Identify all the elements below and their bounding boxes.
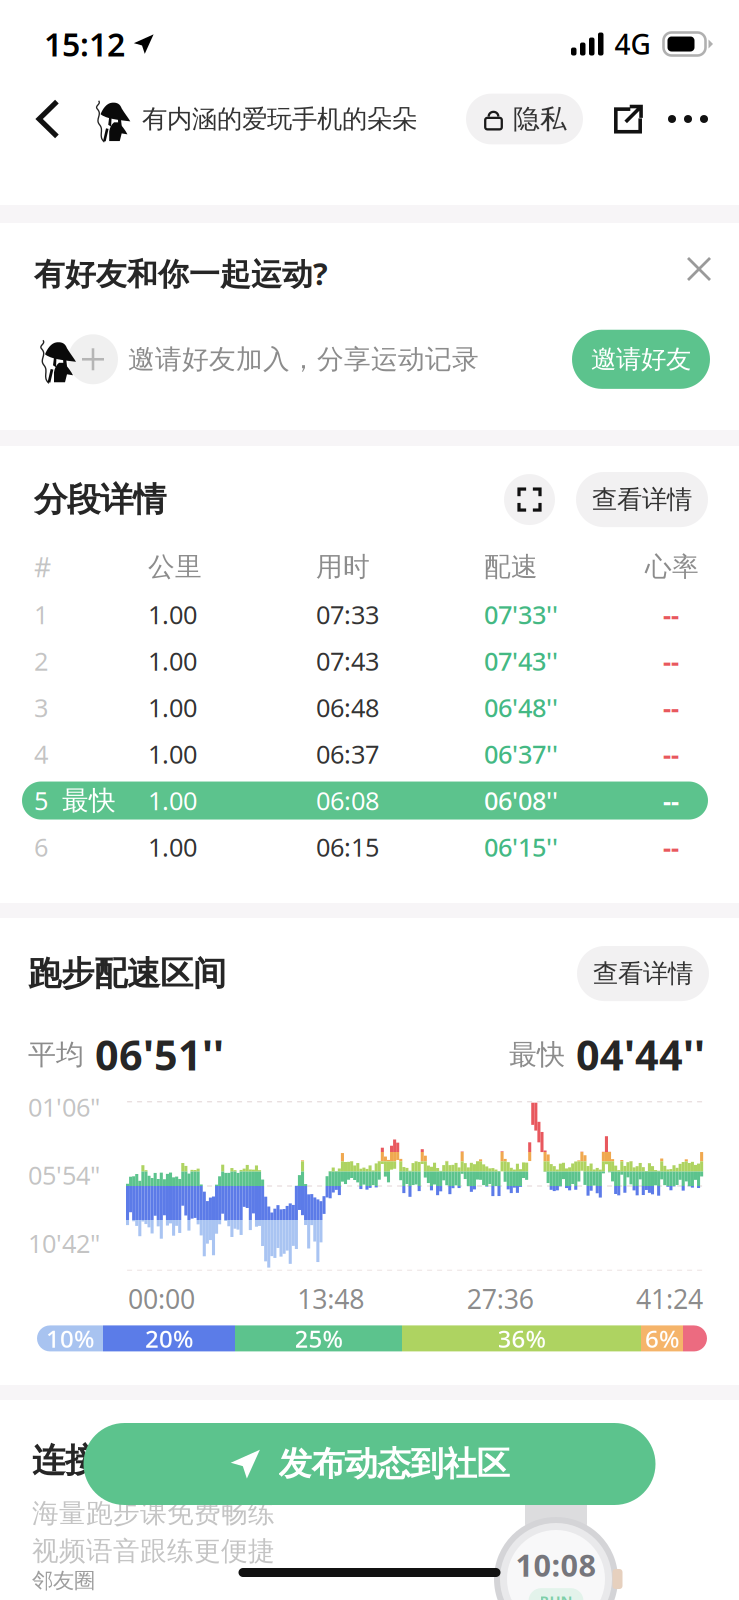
staticText: 6 (34, 830, 48, 864)
button[interactable]: Back (20, 88, 76, 150)
staticText: 06:08 (316, 784, 379, 817)
staticText: 有内涵的爱玩手机的朵朵 (142, 103, 417, 134)
staticText: 41:24 (636, 1281, 703, 1316)
staticText: 查看详情 (592, 484, 692, 515)
staticText: 连接手表 (32, 1440, 164, 1481)
staticText: 00:00 (128, 1281, 195, 1316)
staticText: 06:15 (316, 830, 379, 864)
staticText: 01'06" (28, 1090, 100, 1124)
staticText: 06'48'' (484, 691, 558, 724)
staticText: 1.00 (148, 644, 197, 678)
button[interactable]: 隐私 (466, 94, 583, 144)
staticText: 07:33 (316, 598, 379, 631)
staticText: 25% (294, 1322, 342, 1354)
staticText: 邀请好友加入，分享运动记录 (128, 343, 479, 376)
staticText: 1.00 (148, 830, 197, 864)
button[interactable]: 发布动态到社区 (83, 1423, 655, 1505)
staticText: 07'33'' (484, 598, 558, 631)
staticText: 10% (46, 1322, 94, 1354)
staticText: 4G (614, 25, 650, 63)
staticText: -- (663, 830, 679, 864)
staticText: 海量跑步课免费畅练 (32, 1497, 275, 1530)
staticText: 心率 (645, 550, 699, 583)
staticText: -- (663, 598, 679, 631)
staticText: 06'51'' (84, 1027, 224, 1082)
staticText: 最快 (509, 1037, 565, 1072)
staticText: 跑步配速区间 (28, 953, 226, 994)
staticText: 06:37 (316, 737, 379, 771)
staticText: 邀请好友 (591, 344, 691, 375)
staticText: 5 (34, 784, 48, 817)
staticText: 1.00 (148, 691, 197, 724)
button[interactable]: More (661, 91, 715, 147)
staticText: 36% (497, 1322, 545, 1354)
button[interactable]: 查看详情 (576, 472, 708, 527)
button[interactable]: 查看详情 (577, 946, 709, 1001)
staticText: 06'08'' (484, 784, 558, 817)
staticText: -- (663, 784, 679, 817)
staticText: 13:48 (297, 1281, 364, 1316)
staticText: 最快 (62, 784, 116, 817)
staticText: RUN (539, 1591, 572, 1600)
staticText: 10:08 (515, 1544, 596, 1585)
staticText: 20% (145, 1322, 193, 1354)
staticText: 1 (34, 598, 48, 631)
staticText: 10'42" (28, 1226, 100, 1260)
staticText: 3 (34, 691, 48, 724)
staticText: 4 (34, 737, 48, 771)
staticText: 1.00 (148, 784, 197, 817)
staticText: 06:48 (316, 691, 379, 724)
staticText: 1.00 (148, 598, 197, 631)
button[interactable]: Close (688, 247, 710, 291)
staticText: 隐私 (513, 103, 567, 135)
staticText: 6% (645, 1322, 679, 1354)
staticText: 06'37'' (484, 737, 558, 771)
staticText: 视频语音跟练更便捷 (32, 1535, 275, 1567)
staticText: 27:36 (467, 1281, 534, 1316)
staticText: 07:43 (316, 644, 379, 678)
staticText: 07'43'' (484, 644, 558, 678)
staticText: 查看详情 (593, 958, 693, 989)
staticText: -- (663, 691, 679, 724)
staticText: 1.00 (148, 737, 197, 771)
staticText: 分段详情 (34, 479, 166, 520)
staticText: -- (663, 737, 679, 771)
staticText: # (34, 549, 51, 584)
staticText: 平均 (28, 1037, 84, 1072)
staticText: 配速 (484, 550, 538, 583)
staticText: 邻友圈 (32, 1567, 95, 1594)
staticText: 2 (34, 644, 48, 678)
staticText: 公里 (148, 550, 202, 583)
staticText: 05'54" (28, 1158, 100, 1192)
button[interactable]: Fullscreen (504, 474, 555, 525)
staticText: 用时 (316, 550, 370, 583)
button[interactable]: Share (599, 91, 657, 147)
staticText: 06'15'' (484, 830, 558, 864)
staticText: -- (663, 644, 679, 678)
button[interactable]: 邀请好友 (572, 330, 710, 389)
staticText: 04'44'' (565, 1027, 705, 1082)
staticText: 15:12 (44, 23, 125, 65)
staticText: 发布动态到社区 (278, 1443, 509, 1484)
staticText: 有好友和你一起运动? (34, 253, 328, 294)
